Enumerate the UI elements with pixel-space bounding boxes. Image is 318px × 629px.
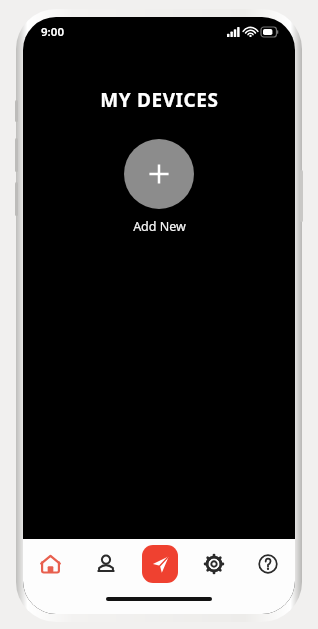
button[interactable]: Profile — [78, 539, 133, 589]
button[interactable]: Home — [23, 539, 78, 589]
button[interactable]: Help — [241, 539, 295, 589]
staticText: MY DEVICES — [100, 87, 219, 113]
button[interactable]: Navigate — [133, 539, 187, 589]
staticText: Add New — [133, 218, 186, 235]
button[interactable]: Settings — [187, 539, 241, 589]
staticText: 9:00 — [41, 24, 64, 40]
button[interactable]: Add New device — [114, 137, 204, 237]
